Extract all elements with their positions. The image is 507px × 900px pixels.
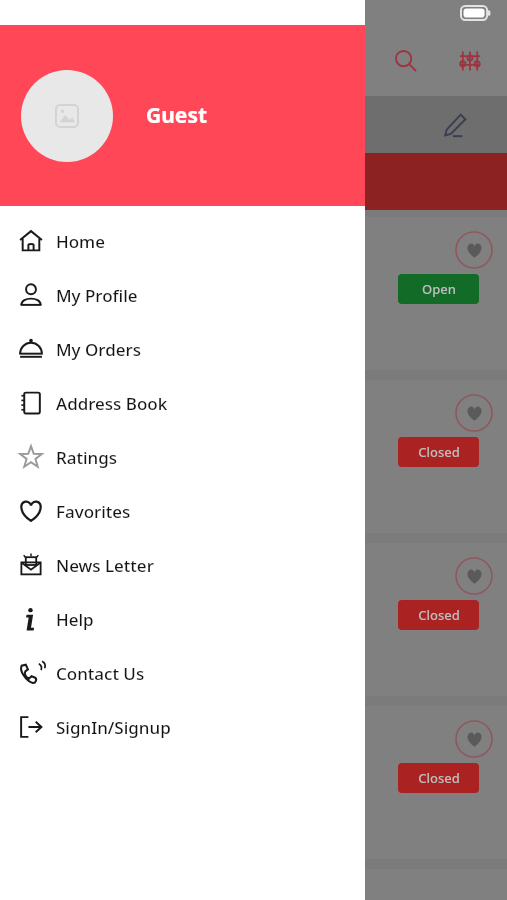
staticText: Home <box>56 230 105 253</box>
button[interactable]: Favorite <box>455 720 493 758</box>
staticText: Mins <box>2 323 34 342</box>
button[interactable]: Favorites <box>0 484 365 538</box>
button[interactable]: News Letter <box>0 538 365 592</box>
button[interactable]: Favorite <box>455 231 493 269</box>
button[interactable]: Favorite <box>455 394 493 432</box>
button[interactable]: Edit <box>433 103 477 147</box>
staticText: Guest <box>146 101 208 130</box>
staticText: ery <box>2 605 29 630</box>
button[interactable]: Favorite <box>0 706 507 859</box>
button[interactable]: Closed <box>398 437 479 467</box>
button[interactable]: Open <box>398 274 479 304</box>
staticText: My Profile <box>56 284 138 307</box>
button[interactable]: Favorite <box>455 557 493 595</box>
button[interactable]: My Profile <box>0 268 365 322</box>
staticText: Contact Us <box>56 662 145 685</box>
button[interactable]: Address Book <box>0 376 365 430</box>
staticText: Closed <box>418 769 460 787</box>
button[interactable]: My Orders <box>0 322 365 376</box>
button[interactable]: Filter <box>447 38 493 84</box>
button[interactable]: Contact Us <box>0 646 365 700</box>
staticText: Address Book <box>56 392 168 415</box>
staticText: Favorites <box>56 500 131 523</box>
button[interactable]: Closed <box>398 600 479 630</box>
button[interactable]: Favorite <box>0 217 507 370</box>
staticText: My Orders <box>56 338 141 361</box>
button[interactable]: Home <box>0 214 365 268</box>
staticText: Open <box>422 280 456 298</box>
staticText: Ratings <box>56 446 118 469</box>
button[interactable]: SignIn/Signup <box>0 700 365 754</box>
staticText: Mins <box>2 649 34 668</box>
staticText: Closed <box>418 606 460 624</box>
staticText: SignIn/Signup <box>56 716 171 739</box>
staticText: News Letter <box>56 554 154 577</box>
button[interactable]: Ratings <box>0 430 365 484</box>
button[interactable]: Favorite <box>0 543 507 696</box>
staticText: Help <box>56 608 94 631</box>
button[interactable]: Guest <box>0 25 365 206</box>
button[interactable]: Search <box>383 38 429 84</box>
button[interactable]: Favorite <box>0 380 507 533</box>
button[interactable]: Closed <box>398 763 479 793</box>
button[interactable]: Help <box>0 592 365 646</box>
staticText: Closed <box>418 443 460 461</box>
staticText: Mins <box>2 486 34 505</box>
